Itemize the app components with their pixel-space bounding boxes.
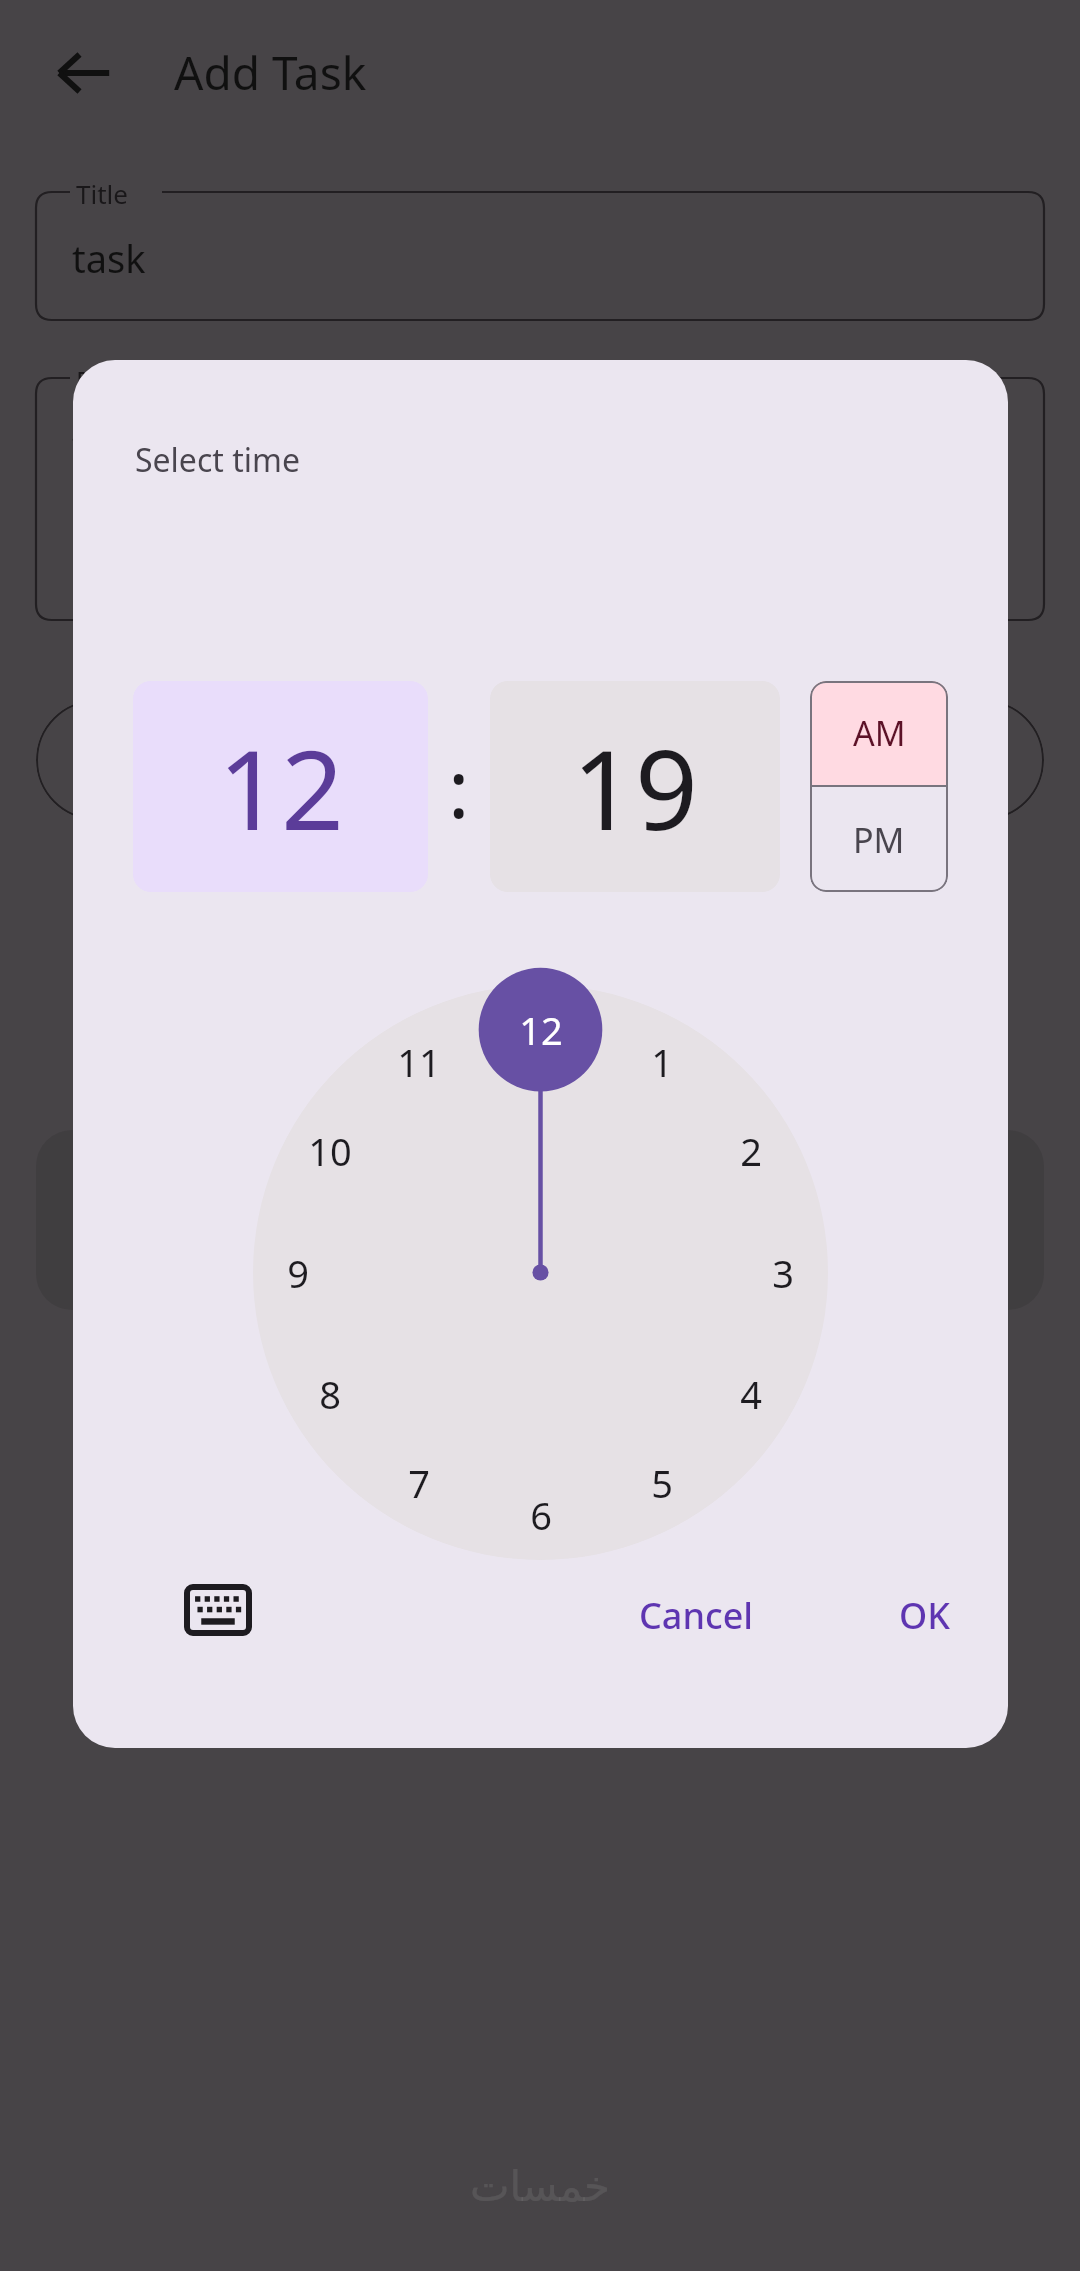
staticText: AM bbox=[853, 710, 906, 756]
staticText: 2 bbox=[740, 1125, 762, 1177]
staticText: 12 bbox=[519, 1004, 563, 1056]
staticText: : bbox=[448, 732, 470, 841]
button[interactable]: 19 bbox=[490, 681, 780, 892]
staticText: 12 bbox=[218, 712, 344, 862]
staticText: 7 bbox=[408, 1457, 430, 1509]
staticText: task bbox=[72, 232, 146, 284]
button[interactable] bbox=[36, 1130, 466, 1310]
staticText: 4 bbox=[740, 1368, 762, 1420]
staticText: 3 bbox=[772, 1247, 794, 1299]
staticText: Title bbox=[76, 176, 128, 211]
button[interactable] bbox=[614, 1130, 1044, 1310]
staticText: 5 bbox=[651, 1457, 673, 1509]
staticText: خمسات bbox=[470, 2162, 611, 2211]
button[interactable]: 12 bbox=[133, 681, 428, 892]
staticText: Cancel bbox=[639, 1591, 754, 1640]
staticText: OK bbox=[899, 1591, 950, 1640]
staticText: 19 bbox=[572, 712, 698, 862]
staticText: Select time bbox=[135, 438, 300, 482]
button[interactable]: PM bbox=[810, 787, 948, 892]
button[interactable]: Cancel bbox=[613, 1567, 780, 1663]
staticText: Add Task bbox=[174, 41, 367, 104]
button[interactable]: OK bbox=[873, 1567, 976, 1663]
staticText: 10 bbox=[308, 1125, 352, 1177]
staticText: 6 bbox=[530, 1489, 552, 1541]
staticText: PM bbox=[853, 817, 905, 863]
button[interactable]: Clock dial bbox=[253, 985, 828, 1560]
staticText: Description bbox=[76, 362, 216, 397]
button[interactable] bbox=[36, 700, 466, 820]
staticText: 11 bbox=[397, 1036, 441, 1088]
staticText: task bbox=[72, 418, 146, 470]
button[interactable]: AM bbox=[810, 681, 948, 785]
button[interactable]: Switch to text input bbox=[163, 1555, 273, 1665]
staticText: 1 bbox=[651, 1036, 673, 1088]
staticText: 9 bbox=[287, 1247, 309, 1299]
button[interactable]: Back bbox=[36, 25, 132, 121]
staticText: 8 bbox=[319, 1368, 341, 1420]
button[interactable] bbox=[614, 700, 1044, 820]
